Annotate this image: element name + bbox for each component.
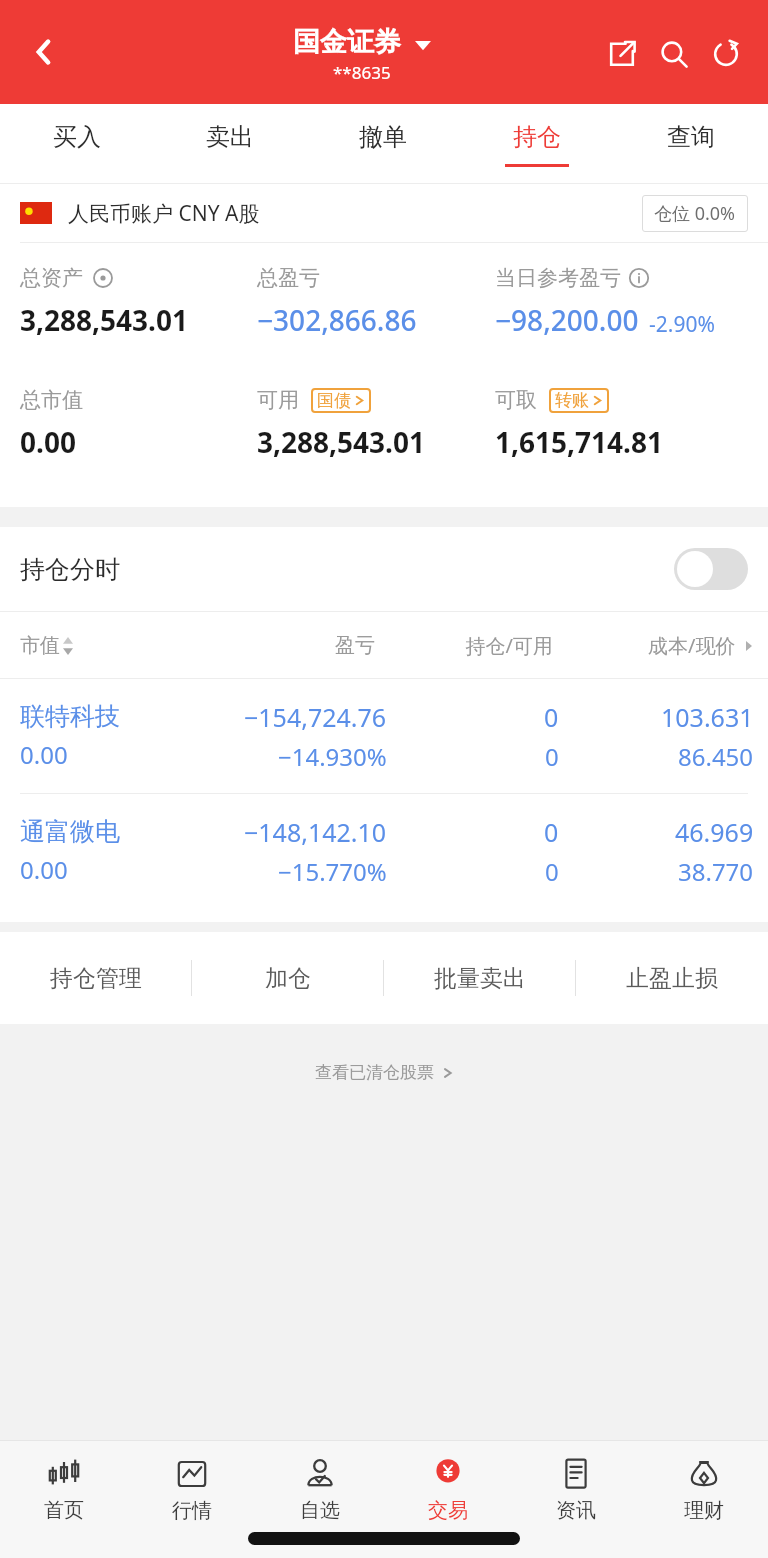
staticText: 持仓管理 [50,964,142,993]
staticText: 交易 [428,1498,468,1523]
staticText: −15.770% [278,855,387,888]
button[interactable]: Search [648,28,700,80]
button[interactable]: 理财 [640,1454,768,1558]
staticText: −148,142.10 [244,815,387,849]
button[interactable]: 持仓 [460,104,614,184]
staticText: 查看已清仓股票 [315,1062,434,1083]
staticText: 仓位 0.0% [654,201,736,226]
button[interactable]: 国债 [311,388,371,413]
staticText: 3,288,543.01 [20,301,188,339]
staticText: 总盈亏 [257,265,320,291]
staticText: 首页 [44,1498,84,1523]
staticText: **8635 [333,61,391,84]
button[interactable]: 查看已清仓股票 [305,1058,464,1087]
staticText: 0.00 [20,853,68,886]
staticText: 人民币账户 CNY A股 [68,199,260,228]
staticText: 0.00 [20,423,76,461]
staticText: 国金证券 [293,25,401,59]
button[interactable]: 持仓管理 [0,932,192,1024]
staticText: 总市值 [20,387,83,413]
staticText: 盈亏 [205,633,375,658]
staticText: −154,724.76 [244,700,387,734]
button[interactable]: 首页 [0,1454,128,1558]
button[interactable]: 查询 [614,104,768,184]
staticText: 46.969 [675,815,754,849]
button[interactable]: 批量卖出 [384,932,576,1024]
staticText: -2.90% [649,310,715,339]
staticText: 3,288,543.01 [257,423,425,461]
staticText: 可用 [257,387,299,413]
button[interactable]: 通富微电 [0,794,768,908]
staticText: −14.930% [278,740,387,773]
staticText: 转账 [555,390,589,411]
button[interactable]: 自选 [256,1454,384,1558]
staticText: 批量卖出 [434,964,526,993]
button[interactable]: 加仓 [192,932,384,1024]
staticText: 成本/现价 [648,632,736,659]
staticText: 市值 [20,633,60,658]
button[interactable]: 转账 [549,388,609,413]
staticText: −302,866.86 [257,301,417,339]
button[interactable]: Refresh [700,28,752,80]
button[interactable]: 卖出 [153,104,306,184]
button[interactable]: 交易 [384,1454,512,1558]
staticText: 持仓分时 [20,554,120,585]
button[interactable]: 止盈止损 [576,932,768,1024]
staticText: 0 [545,855,559,888]
button[interactable]: 撤单 [306,104,460,184]
staticText: 总资产 [20,265,83,291]
button[interactable]: 人民币账户 CNY A股 [0,184,768,242]
staticText: 1,615,714.81 [495,423,663,461]
staticText: 自选 [300,1498,340,1523]
button[interactable]: 仓位 0.0% [642,195,748,232]
button[interactable]: Back [14,22,74,82]
staticText: 0 [545,740,559,773]
staticText: 86.450 [678,740,754,773]
staticText: 持仓/可用 [375,632,553,659]
staticText: 止盈止损 [626,964,718,993]
staticText: 卖出 [206,122,254,152]
button[interactable]: 行情 [128,1454,256,1558]
staticText: 买入 [53,122,101,152]
staticText: 38.770 [678,855,754,888]
button[interactable]: 买入 [0,104,153,184]
staticText: 联特科技 [20,701,120,732]
staticText: 可取 [495,387,537,413]
staticText: 103.631 [661,700,754,734]
staticText: 理财 [684,1498,724,1523]
staticText: 加仓 [265,964,311,993]
button[interactable]: 联特科技 [0,679,768,793]
staticText: 行情 [172,1498,212,1523]
staticText: 0 [544,815,559,849]
button[interactable]: 资讯 [512,1454,640,1558]
staticText: 0.00 [20,738,68,771]
staticText: 查询 [667,122,715,152]
staticText: 0 [544,700,559,734]
staticText: 持仓 [513,122,561,152]
staticText: 当日参考盈亏 [495,265,621,291]
button[interactable]: Share [596,28,648,80]
staticText: 撤单 [359,122,407,152]
staticText: 国债 [317,390,351,411]
staticText: 资讯 [556,1498,596,1523]
button[interactable]: 持仓分时 toggle [674,548,748,590]
staticText: 通富微电 [20,816,120,847]
staticText: −98,200.00 [495,301,639,339]
